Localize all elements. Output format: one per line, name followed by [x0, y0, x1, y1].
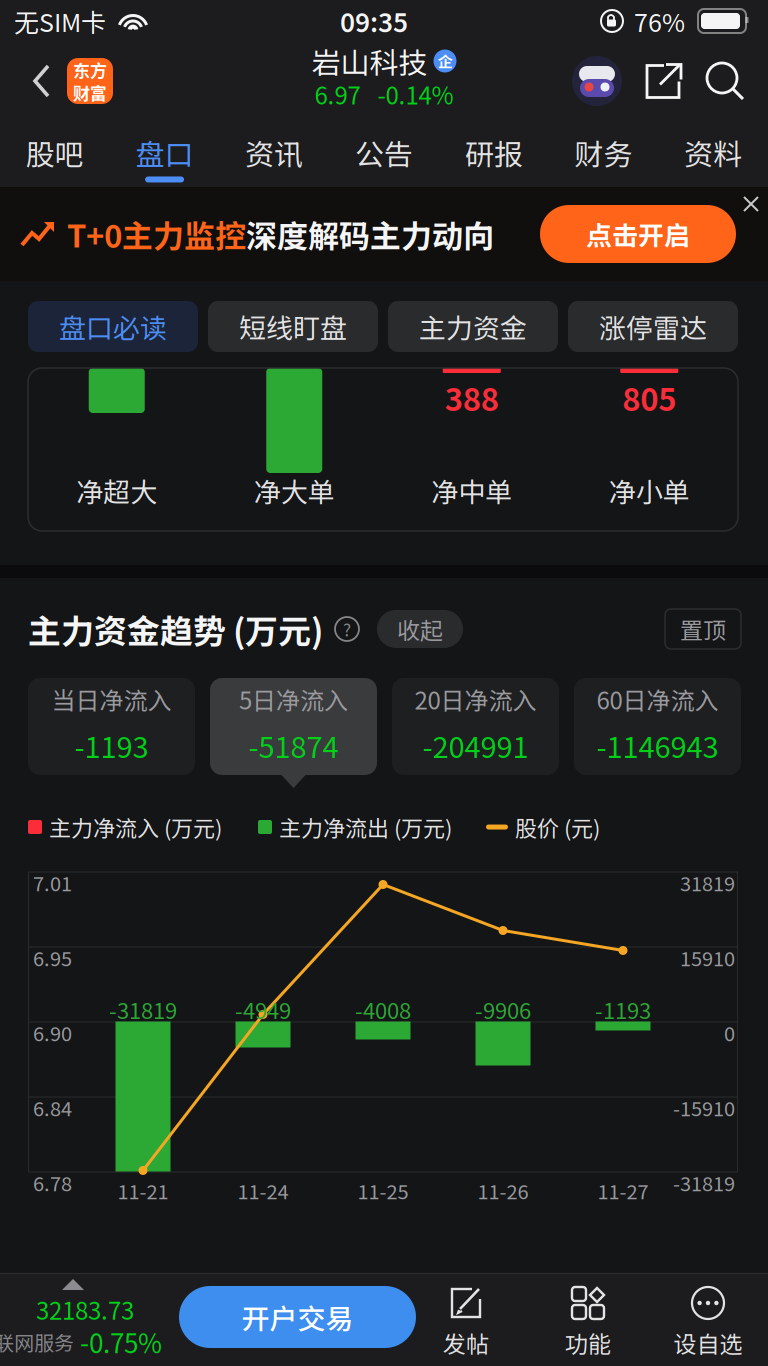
- staticText: 点击开启: [586, 215, 690, 253]
- staticText: 岩山科技: [311, 40, 427, 82]
- button[interactable]: 涨停雷达: [568, 301, 738, 352]
- button[interactable]: 当日净流入: [28, 678, 195, 788]
- button[interactable]: 60日净流入: [574, 678, 741, 788]
- staticText: 09:35: [340, 2, 408, 40]
- staticText: 31819: [680, 868, 735, 897]
- staticText: 发帖: [443, 1326, 489, 1359]
- staticText: 净超大: [76, 471, 157, 510]
- staticText: 资料: [684, 131, 742, 173]
- staticText: 11-24: [237, 1176, 288, 1205]
- button[interactable]: 20日净流入: [392, 678, 559, 788]
- staticText: 32183.73: [36, 1292, 134, 1327]
- button[interactable]: 功能: [528, 1286, 648, 1359]
- staticText: -31819: [109, 994, 177, 1025]
- staticText: 股价 (元): [515, 811, 600, 843]
- staticText: -4949: [235, 994, 291, 1025]
- button[interactable]: Back: [24, 53, 59, 109]
- staticText: 盘口必读: [59, 307, 167, 346]
- staticText: 20日净流入: [414, 682, 536, 716]
- staticText: 11-26: [477, 1176, 528, 1205]
- staticText: 主力净流出 (万元): [279, 811, 452, 843]
- staticText: 互联网服务: [0, 1327, 74, 1356]
- staticText: 当日净流入: [51, 682, 171, 716]
- staticText: -0.14%: [377, 77, 453, 111]
- staticText: 主力资金: [419, 307, 527, 346]
- staticText: 6.97: [314, 77, 360, 111]
- staticText: -1193: [74, 724, 148, 766]
- staticText: 6.78: [33, 1168, 72, 1197]
- staticText: 11-25: [357, 1176, 408, 1205]
- staticText: 短线盯盘: [239, 307, 347, 346]
- button[interactable]: Search: [704, 60, 746, 102]
- button[interactable]: 主力资金: [388, 301, 558, 352]
- staticText: 资讯: [245, 131, 303, 173]
- staticText: 388: [445, 375, 499, 420]
- button[interactable]: 资讯: [219, 120, 329, 187]
- staticText: 805: [622, 375, 676, 420]
- button[interactable]: Close: [734, 187, 768, 221]
- staticText: 开户交易: [241, 1297, 353, 1337]
- staticText: ?: [343, 617, 351, 641]
- staticText: 7.01: [33, 868, 72, 897]
- button[interactable]: 5日净流入: [210, 678, 377, 788]
- staticText: 6.95: [33, 943, 72, 972]
- staticText: 主力净流入 (万元): [49, 811, 222, 843]
- staticText: 公告: [355, 131, 413, 173]
- staticText: 11-21: [117, 1176, 168, 1205]
- staticText: 置顶: [680, 612, 726, 646]
- staticText: 11-27: [597, 1176, 648, 1205]
- staticText: 无SIM卡: [14, 3, 106, 39]
- staticText: 财务: [574, 131, 632, 173]
- staticText: 企: [437, 50, 452, 72]
- staticText: 股吧: [26, 131, 84, 173]
- button[interactable]: 公告: [329, 120, 439, 187]
- staticText: -51874: [248, 724, 338, 766]
- staticText: 净大单: [254, 471, 335, 510]
- staticText: -1193: [595, 994, 651, 1025]
- button[interactable]: 东方财富: [67, 58, 113, 104]
- staticText: -9906: [475, 994, 531, 1025]
- staticText: 财富: [73, 80, 107, 105]
- button[interactable]: 盘口: [110, 120, 219, 187]
- staticText: -15910: [673, 1093, 735, 1122]
- staticText: 15910: [680, 943, 735, 972]
- staticText: 深度解码主力动向: [246, 212, 494, 256]
- staticText: 净中单: [431, 471, 512, 510]
- staticText: T+0主力监控: [67, 212, 246, 256]
- button[interactable]: 研报: [439, 120, 549, 187]
- staticText: 涨停雷达: [599, 307, 707, 346]
- staticText: 6.84: [33, 1093, 72, 1122]
- staticText: 主力资金趋势 (万元): [28, 605, 323, 653]
- button[interactable]: Mascot: [572, 56, 622, 106]
- staticText: 设自选: [673, 1326, 742, 1359]
- button[interactable]: 财务: [549, 120, 658, 187]
- staticText: 6.90: [33, 1018, 72, 1047]
- staticText: 60日净流入: [596, 682, 718, 716]
- staticText: 东方: [73, 57, 107, 82]
- button[interactable]: 置顶: [665, 609, 741, 649]
- staticText: 研报: [465, 131, 523, 173]
- staticText: 收起: [397, 612, 443, 646]
- staticText: 功能: [565, 1326, 611, 1359]
- staticText: -0.75%: [80, 1323, 162, 1361]
- staticText: 76%: [634, 3, 685, 39]
- staticText: -1146943: [596, 724, 718, 766]
- button[interactable]: 盘口必读: [28, 301, 198, 352]
- button[interactable]: Share: [644, 60, 684, 101]
- staticText: -4008: [355, 994, 411, 1025]
- staticText: -204991: [422, 724, 528, 766]
- staticText: -31819: [673, 1168, 735, 1197]
- button[interactable]: 设自选: [648, 1286, 768, 1359]
- staticText: 5日净流入: [239, 682, 348, 716]
- staticText: 盘口: [136, 131, 194, 173]
- button[interactable]: 发帖: [406, 1286, 526, 1359]
- staticText: 0: [724, 1018, 735, 1047]
- button[interactable]: 32183.73: [0, 1274, 168, 1364]
- button[interactable]: 收起: [377, 610, 463, 648]
- button[interactable]: 资料: [658, 120, 768, 187]
- button[interactable]: T+0主力监控: [0, 187, 768, 281]
- button[interactable]: 短线盯盘: [208, 301, 378, 352]
- button[interactable]: 股吧: [0, 120, 110, 187]
- button[interactable]: 开户交易: [179, 1286, 416, 1348]
- staticText: 净小单: [609, 471, 690, 510]
